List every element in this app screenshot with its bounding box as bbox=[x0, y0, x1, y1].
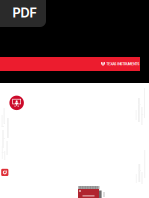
staticText: TEXAS INSTRUMENTS bbox=[106, 62, 139, 66]
staticText: PDF bbox=[12, 5, 36, 21]
button[interactable]: PDF document bbox=[0, 0, 46, 27]
